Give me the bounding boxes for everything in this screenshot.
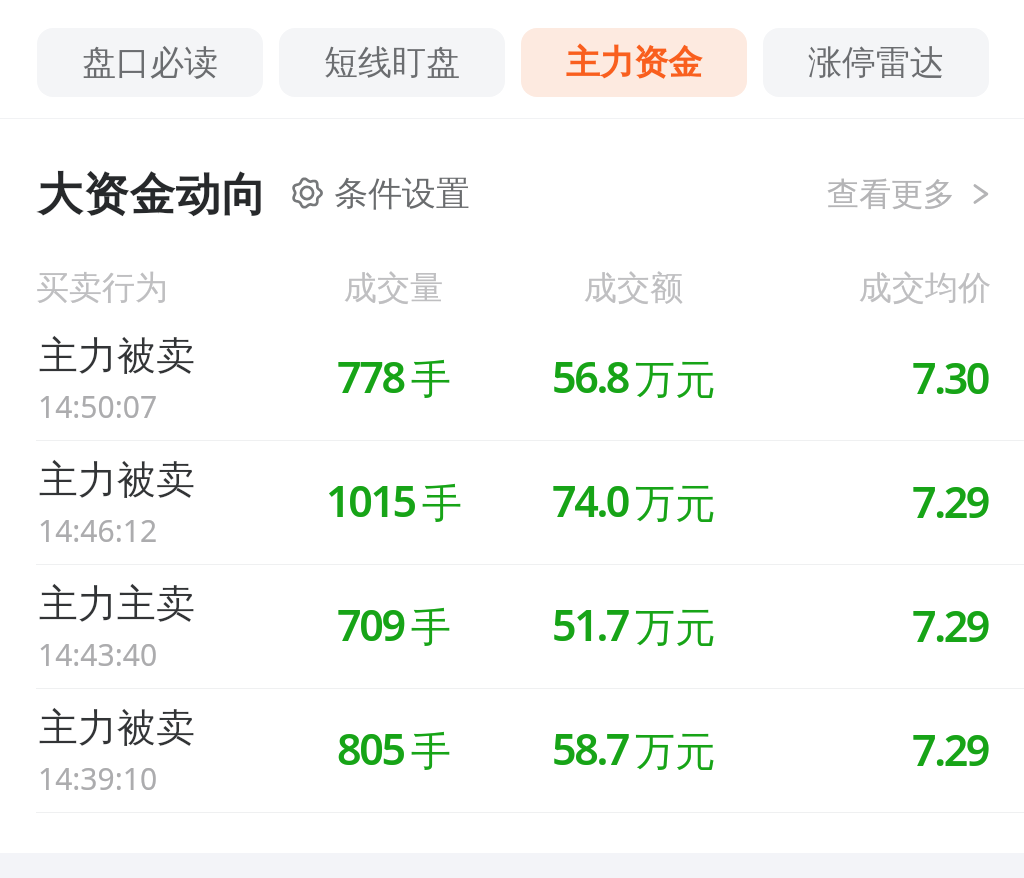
staticText: 14:39:10 (38, 758, 158, 799)
staticText: 万元 (635, 726, 715, 776)
staticText: 778 (337, 347, 404, 406)
staticText: 查看更多 (827, 174, 955, 214)
staticText: 7.30 (912, 348, 989, 407)
staticText: 万元 (635, 354, 715, 404)
staticText: 14:43:40 (38, 634, 158, 675)
staticText: 7.29 (912, 472, 989, 531)
staticText: 主力被卖 (39, 455, 195, 504)
staticText: 14:50:07 (38, 386, 158, 427)
button[interactable]: 查看更多 (827, 165, 993, 215)
staticText: 条件设置 (334, 172, 470, 214)
staticText: 709 (337, 595, 404, 654)
staticText: 万元 (635, 602, 715, 652)
staticText: 成交均价 (859, 267, 991, 309)
staticText: 大资金动向 (37, 167, 267, 224)
staticText: 主力主卖 (39, 579, 195, 628)
other: 条件设置 (291, 177, 323, 209)
staticText: 涨停雷达 (808, 41, 944, 84)
staticText: 手 (411, 726, 451, 776)
staticText: 56.8 (552, 347, 629, 406)
button[interactable]: 主力被卖 (0, 440, 1024, 564)
button[interactable]: 主力资金 (521, 28, 747, 97)
staticText: 74.0 (552, 471, 629, 530)
staticText: 成交额 (584, 267, 683, 309)
button[interactable]: 短线盯盘 (279, 28, 505, 97)
staticText: 58.7 (552, 719, 629, 778)
staticText: 14:46:12 (38, 510, 158, 551)
staticText: 805 (337, 719, 404, 778)
button[interactable]: 主力主卖 (0, 564, 1024, 688)
staticText: 7.29 (912, 720, 989, 779)
staticText: 短线盯盘 (324, 41, 460, 84)
staticText: 7.29 (912, 596, 989, 655)
staticText: 手 (411, 602, 451, 652)
staticText: 主力被卖 (39, 703, 195, 752)
button[interactable]: 主力被卖 (0, 316, 1024, 440)
staticText: 1015 (326, 471, 415, 530)
staticText: 手 (411, 354, 451, 404)
button[interactable]: 主力被卖 (0, 688, 1024, 812)
staticText: 51.7 (552, 595, 629, 654)
other: 查看更多 (971, 183, 993, 205)
button[interactable]: 盘口必读 (37, 28, 263, 97)
staticText: 买卖行为 (36, 267, 168, 309)
staticText: 万元 (635, 478, 715, 528)
staticText: 盘口必读 (82, 41, 218, 84)
staticText: 手 (422, 478, 462, 528)
staticText: 主力资金 (566, 41, 702, 84)
button[interactable]: 条件设置 (291, 164, 470, 214)
staticText: 主力被卖 (39, 331, 195, 380)
button[interactable]: 涨停雷达 (763, 28, 989, 97)
staticText: 成交量 (344, 267, 443, 309)
